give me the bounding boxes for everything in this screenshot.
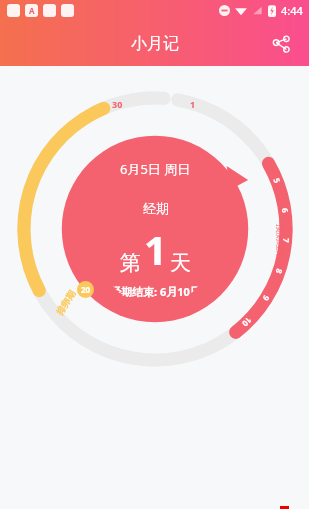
staticText: 经期 [143,200,169,216]
staticText: 1 [190,98,196,110]
staticText: A [29,5,35,16]
button[interactable]: 6月5日 周日 [102,152,209,307]
staticText: 排卵期 [54,288,77,317]
button[interactable]: Share [265,28,297,60]
staticText: 第 [120,250,141,276]
staticText: 20 [81,284,91,295]
staticText: 天 [170,250,191,276]
staticText: 1 [144,222,167,276]
staticText: 6月5日 周日 [120,160,191,178]
staticText: 7 [281,237,292,243]
staticText: 4:44 [281,3,303,18]
staticText: 30 [112,98,123,110]
staticText: 9 [260,293,272,304]
staticText: 10 [240,315,254,330]
staticText: 6 [280,207,291,214]
staticText: 经期结束: 6月10日 [110,284,201,299]
staticText: 8 [273,267,285,276]
staticText: 小月记 [131,34,179,54]
staticText: 预测经期 [274,223,285,259]
staticText: 5 [271,176,284,185]
